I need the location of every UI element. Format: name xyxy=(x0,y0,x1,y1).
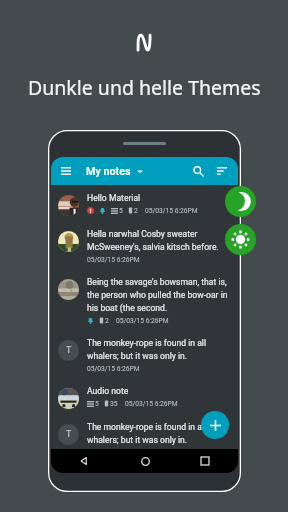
staticText: 05/03/15 6:26PM xyxy=(87,256,140,264)
button[interactable]: Back xyxy=(77,454,91,468)
staticText: Audio note xyxy=(87,386,129,396)
staticText: whalers; but it was only in. xyxy=(87,435,188,445)
button[interactable]: Audio note xyxy=(51,378,238,414)
staticText: Dunkle und helle Themes xyxy=(28,74,261,101)
button[interactable]: Home xyxy=(138,454,152,468)
staticText: Hella narwhal Cosby sweater xyxy=(87,229,198,239)
button[interactable]: Dark theme xyxy=(225,186,256,217)
button[interactable]: Menu xyxy=(58,163,74,179)
staticText: 05/03/15 6:26PM xyxy=(145,207,198,215)
button[interactable]: Add note xyxy=(201,411,229,439)
button[interactable]: Search xyxy=(190,163,206,179)
staticText: Hello Material xyxy=(87,193,141,203)
button[interactable]: T xyxy=(51,330,238,378)
staticText: The monkey-rope is found in all xyxy=(87,338,207,348)
staticText: 05/03/15 6:26PM xyxy=(116,317,169,325)
staticText: his boat (the second. xyxy=(87,303,168,313)
button[interactable]: T xyxy=(51,414,238,462)
button[interactable]: Being the savage's bowsman, that is, xyxy=(51,269,238,330)
staticText: 5 xyxy=(95,400,99,408)
staticText: 05/03/15 6:26PM xyxy=(87,365,140,373)
staticText: 5 xyxy=(119,207,123,215)
button[interactable]: Light theme xyxy=(225,224,256,255)
button[interactable]: Hello Material xyxy=(51,185,238,221)
staticText: 2 xyxy=(105,317,109,325)
staticText: the person who pulled the bow-oar in xyxy=(87,290,228,300)
staticText: 05/03/15 6:26PM xyxy=(125,400,178,408)
staticText: My notes xyxy=(86,165,131,178)
staticText: whalers; but it was only in. xyxy=(87,351,188,361)
staticText: 2 xyxy=(134,207,138,215)
button[interactable]: Recents xyxy=(198,454,212,468)
staticText: 35 xyxy=(110,400,118,408)
button[interactable]: Sort xyxy=(214,163,230,179)
staticText: T xyxy=(66,429,72,440)
staticText: T xyxy=(66,345,72,356)
staticText: Being the savage's bowsman, that is, xyxy=(87,277,227,287)
staticText: The monkey-rope is found in all xyxy=(87,422,207,432)
button[interactable]: Hella narwhal Cosby sweater xyxy=(51,221,238,269)
staticText: McSweeney's, salvia kitsch before. xyxy=(87,242,219,252)
